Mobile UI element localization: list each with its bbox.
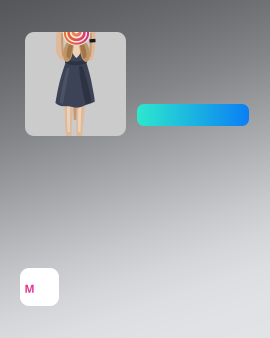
staticText: M	[24, 281, 34, 296]
button[interactable]: Continue	[137, 104, 249, 126]
button[interactable]: Brand	[20, 268, 59, 306]
button[interactable]: Product photo	[25, 32, 126, 136]
